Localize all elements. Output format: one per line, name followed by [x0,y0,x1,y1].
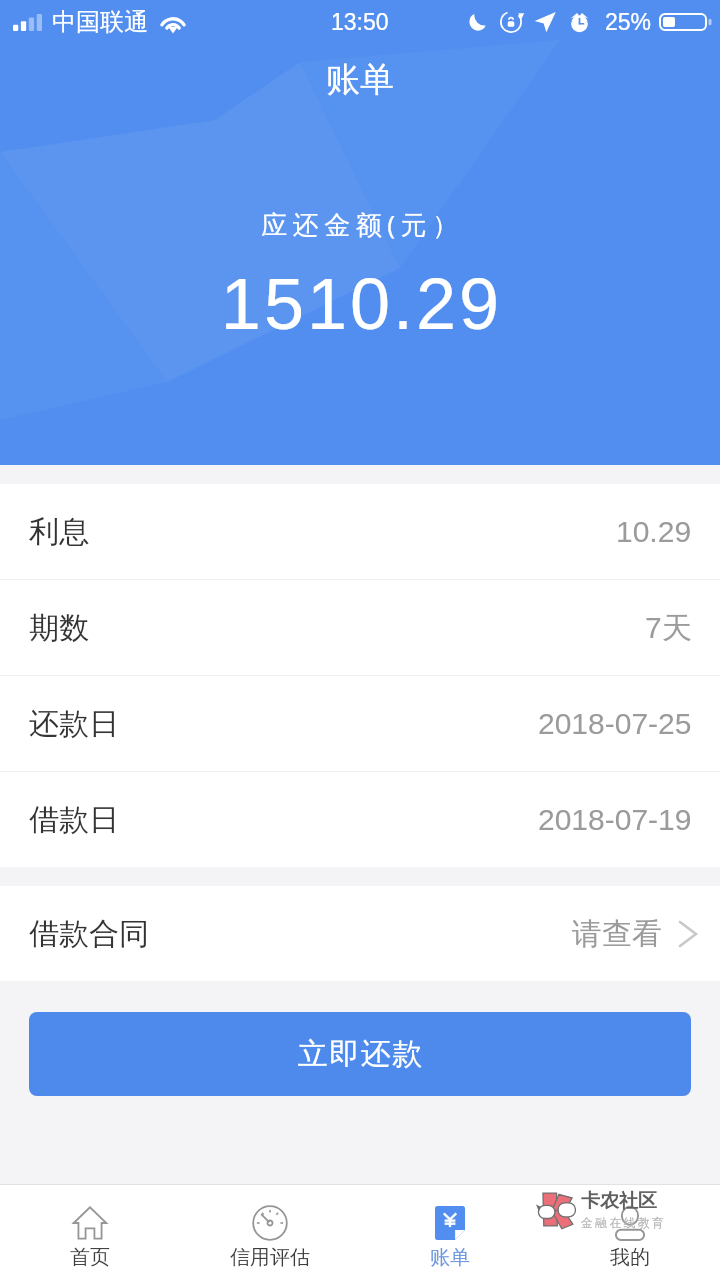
staticText: 期数 [29,609,89,647]
button[interactable]: Profile [540,1185,720,1280]
staticText: 2018-07-19 [538,803,692,837]
staticText: 金融在线教育 [581,1215,667,1230]
staticText: 利息 [29,513,89,551]
button[interactable]: Bills [360,1185,540,1280]
button[interactable]: 借款日 [0,772,720,867]
button[interactable]: Credit rating [180,1185,360,1280]
staticText: 25% [605,9,652,35]
staticText: 10.29 [616,515,692,549]
staticText: 请查看 [572,915,662,953]
staticText: 我的 [610,1245,650,1270]
staticText: 7天 [645,609,692,647]
button[interactable]: 利息 [0,484,720,579]
staticText: 卡农社区 [581,1189,657,1213]
staticText: 账单 [0,58,720,101]
staticText: 借款日 [29,801,119,839]
staticText: 信用评估 [230,1245,310,1270]
staticText: 中国联通 [52,7,148,37]
staticText: 1510.29 [3,264,720,344]
staticText: 立即还款 [297,1035,423,1073]
button[interactable]: 立即还款 [29,1012,691,1096]
button[interactable]: 还款日 [0,676,720,771]
staticText: 2018-07-25 [538,707,692,741]
staticText: 13:50 [331,9,389,35]
staticText: 还款日 [29,705,119,743]
button[interactable]: Home [0,1185,180,1280]
staticText: 应还金额(元） [5,206,720,242]
button[interactable]: 借款合同 [0,886,720,981]
button[interactable]: 期数 [0,580,720,675]
staticText: 账单 [430,1245,470,1270]
staticText: 借款合同 [29,915,149,953]
staticText: 首页 [70,1245,110,1270]
